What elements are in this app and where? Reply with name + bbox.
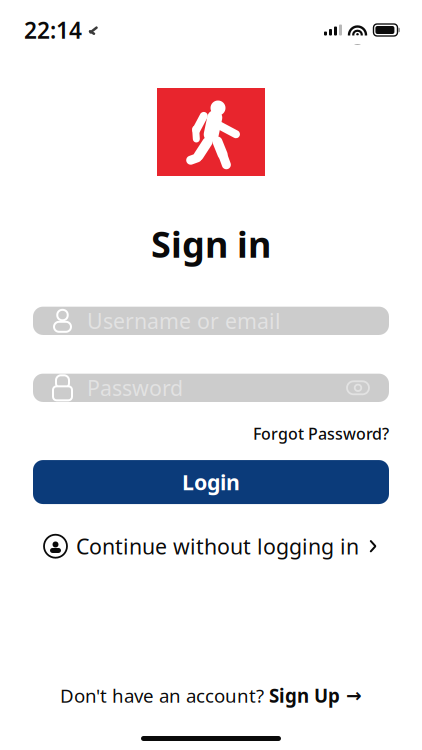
- button[interactable]: Show password: [346, 379, 370, 397]
- button[interactable]: Login: [33, 460, 389, 504]
- button[interactable]: Continue without logging in: [34, 526, 388, 566]
- button[interactable]: Forgot Password?: [253, 420, 389, 447]
- staticText: 22:14: [24, 15, 82, 45]
- staticText: Sign Up: [269, 683, 340, 708]
- staticText: →: [340, 685, 362, 706]
- staticText: Forgot Password?: [253, 423, 389, 444]
- button[interactable]: Don't have an account?: [48, 677, 374, 714]
- staticText: Login: [182, 468, 240, 496]
- staticText: Password: [87, 374, 183, 402]
- staticText: Username or email: [87, 307, 281, 335]
- staticText: Don't have an account?: [60, 683, 269, 708]
- staticText: Continue without logging in: [76, 532, 359, 560]
- staticText: Sign in: [151, 220, 271, 268]
